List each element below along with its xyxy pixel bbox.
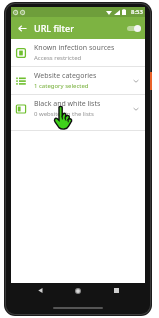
- staticText: 0 websites in the lists: [34, 110, 94, 118]
- button[interactable]: Known infection sources: [11, 39, 145, 66]
- staticText: Black and white lists: [34, 99, 101, 109]
- button[interactable]: Back: [31, 283, 49, 298]
- staticText: Known infection sources: [34, 43, 115, 53]
- staticText: 8:53: [131, 8, 143, 16]
- staticText: Access restricted: [34, 54, 82, 62]
- button[interactable]: Website categories: [11, 67, 145, 94]
- staticText: URL filter: [34, 22, 74, 34]
- button[interactable]: Enable URL filter: [123, 20, 141, 36]
- button[interactable]: Recent apps: [107, 283, 125, 298]
- button[interactable]: Home: [69, 283, 87, 298]
- staticText: Website categories: [34, 71, 97, 81]
- button[interactable]: Black and white lists: [11, 95, 145, 122]
- staticText: 1 category selected: [34, 82, 89, 90]
- button[interactable]: Back: [14, 20, 30, 36]
